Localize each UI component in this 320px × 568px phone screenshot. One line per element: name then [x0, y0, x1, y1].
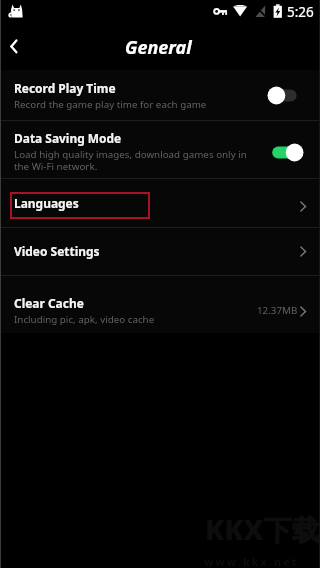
button[interactable]: Switch on [267, 143, 304, 162]
button[interactable]: Switch off [267, 86, 304, 105]
button[interactable]: Languages [0, 179, 320, 227]
button[interactable]: Video Settings [0, 228, 320, 275]
staticText: Data Saving Mode [14, 130, 122, 146]
button[interactable]: Record Play Time [0, 70, 320, 120]
staticText: Load high quality images, download games… [14, 148, 247, 173]
staticText: www.kkx.net [204, 554, 299, 568]
button[interactable]: Data Saving Mode [0, 121, 320, 178]
staticText: 12.37MB [257, 304, 298, 317]
button[interactable]: Back [0, 32, 30, 62]
staticText: KKX下载 [205, 510, 320, 548]
staticText: Record Play Time [14, 80, 116, 96]
staticText: 5:26 [287, 3, 314, 21]
staticText: Record the game play time for each game [14, 98, 207, 111]
staticText: Clear Cache [14, 295, 84, 311]
staticText: Including pic, apk, video cache [14, 313, 155, 326]
staticText: Video Settings [14, 243, 296, 259]
button[interactable]: Clear Cache [0, 276, 320, 333]
staticText: Languages [14, 195, 296, 211]
staticText: General [125, 35, 192, 60]
